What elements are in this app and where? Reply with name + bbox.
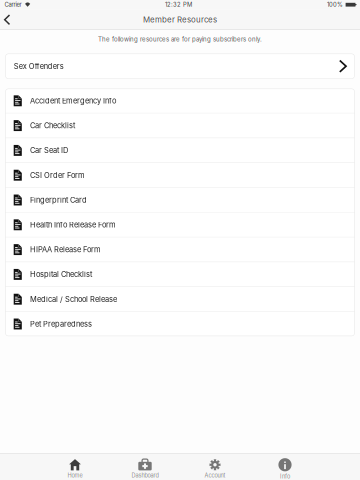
button[interactable]: CSI Order Form	[5, 163, 354, 187]
button[interactable]: Info	[250, 451, 320, 480]
staticText: Dashboard	[131, 472, 158, 479]
button[interactable]: Medical / School Release	[5, 287, 354, 311]
button[interactable]: Car Checklist	[5, 113, 354, 138]
staticText: HIPAA Release Form	[30, 245, 101, 254]
staticText: Account	[204, 472, 225, 479]
staticText: Home	[67, 472, 82, 479]
button[interactable]: Hospital Checklist	[5, 262, 354, 286]
button[interactable]: Dashboard	[110, 452, 180, 480]
staticText: CSI Order Form	[30, 171, 85, 180]
staticText: Accident Emergency Info	[30, 96, 116, 105]
staticText: 12:32 PM	[165, 1, 192, 8]
staticText: Carrier	[4, 1, 21, 8]
staticText: Info	[280, 473, 290, 480]
button[interactable]: HIPAA Release Form	[5, 237, 354, 262]
button[interactable]: Home	[40, 452, 110, 480]
button[interactable]: Sex Offenders	[5, 54, 354, 79]
staticText: Health Info Release Form	[30, 220, 116, 229]
staticText: The following resources are for paying s…	[98, 35, 262, 43]
button[interactable]: Pet Preparedness	[5, 312, 354, 336]
staticText: Medical / School Release	[30, 295, 117, 304]
staticText: Sex Offenders	[14, 62, 64, 71]
button[interactable]: Account	[180, 452, 250, 480]
button[interactable]: Back	[0, 10, 16, 30]
button[interactable]: Health Info Release Form	[5, 213, 354, 237]
button[interactable]: Car Seat ID	[5, 138, 354, 162]
staticText: Car Seat ID	[30, 146, 68, 155]
staticText: Hospital Checklist	[30, 270, 92, 279]
staticText: Fingerprint Card	[30, 195, 87, 204]
staticText: Car Checklist	[30, 121, 75, 130]
staticText: Pet Preparedness	[30, 319, 92, 328]
staticText: 100%	[327, 1, 343, 8]
button[interactable]: Fingerprint Card	[5, 188, 354, 212]
button[interactable]: Accident Emergency Info	[5, 89, 354, 113]
staticText: Member Resources	[143, 15, 217, 24]
